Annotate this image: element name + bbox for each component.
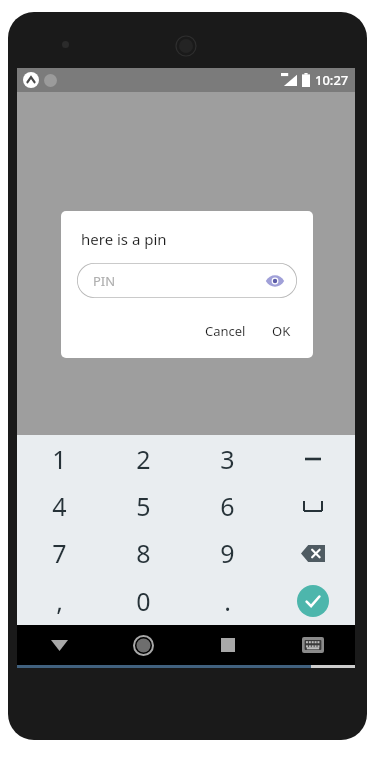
staticText: 6 [220, 489, 235, 523]
button[interactable]: , [17, 577, 101, 625]
button[interactable]: 0 [101, 577, 185, 625]
staticText: 2 [136, 442, 151, 476]
button[interactable]: 1 [17, 435, 101, 482]
button[interactable]: 5 [101, 482, 185, 529]
staticText: 8 [136, 536, 151, 570]
button[interactable]: Back [17, 625, 101, 665]
button[interactable]: Switch keyboard [270, 625, 355, 665]
staticText: PIN [93, 272, 116, 290]
button[interactable]: 9 [185, 529, 270, 577]
button[interactable]: Show PIN [265, 271, 285, 291]
button[interactable]: Dash [270, 435, 355, 482]
button[interactable]: 7 [17, 529, 101, 577]
button[interactable]: OK [264, 316, 299, 346]
button[interactable]: Home [101, 625, 185, 665]
staticText: , [56, 584, 63, 618]
staticText: 7 [52, 536, 67, 570]
staticText: here is a pin [81, 229, 167, 249]
staticText: OK [272, 322, 291, 340]
button[interactable]: 2 [101, 435, 185, 482]
button[interactable]: 6 [185, 482, 270, 529]
button[interactable]: PIN [77, 263, 297, 298]
staticText: . [224, 584, 231, 618]
button[interactable]: Space [270, 482, 355, 529]
button[interactable]: 4 [17, 482, 101, 529]
staticText: 0 [136, 584, 151, 618]
button[interactable]: Enter [270, 577, 355, 625]
staticText: 1 [52, 442, 67, 476]
staticText: 4 [52, 489, 67, 523]
staticText: 9 [220, 536, 235, 570]
staticText: 5 [136, 489, 151, 523]
button[interactable]: Recent apps [185, 625, 270, 665]
button[interactable]: 8 [101, 529, 185, 577]
staticText: 10:27 [315, 71, 349, 89]
button[interactable]: Backspace [270, 529, 355, 577]
staticText: Cancel [205, 322, 246, 340]
button[interactable]: 3 [185, 435, 270, 482]
staticText: 3 [220, 442, 235, 476]
button[interactable]: Cancel [197, 316, 254, 346]
button[interactable]: . [185, 577, 270, 625]
